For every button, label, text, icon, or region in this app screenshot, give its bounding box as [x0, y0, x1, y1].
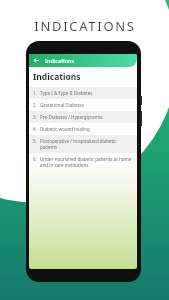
staticText: 5.	[33, 138, 40, 144]
staticText: 2.	[33, 102, 40, 108]
staticText: 6.	[33, 156, 40, 162]
staticText: Diabetic wound healing	[40, 126, 90, 132]
button[interactable]: 6.	[29, 153, 137, 171]
button[interactable]: Back	[32, 56, 41, 65]
staticText: 1.	[33, 90, 40, 96]
staticText: Pre-Diabetes / Hyperglycemia	[40, 114, 103, 120]
staticText: 3.	[33, 114, 40, 120]
button[interactable]: 4.	[29, 123, 137, 135]
staticText: Gestational Diabetes	[40, 102, 84, 108]
staticText: Indications	[45, 57, 75, 64]
button[interactable]: 2.	[29, 99, 137, 111]
staticText: Postoperative / hospitalized diabetic pa…	[40, 138, 133, 150]
button[interactable]: 3.	[29, 111, 137, 123]
staticText: Type I & Type II Diabetes	[40, 90, 93, 96]
staticText: Indications	[33, 71, 81, 83]
button[interactable]: Back	[29, 54, 137, 67]
staticText: INDICATIONS	[34, 17, 136, 35]
button[interactable]: 1.	[29, 87, 137, 99]
staticText: Under-nourished diabetic patients at hom…	[40, 156, 133, 168]
staticText: 4.	[33, 126, 40, 132]
button[interactable]: 5.	[29, 135, 137, 153]
